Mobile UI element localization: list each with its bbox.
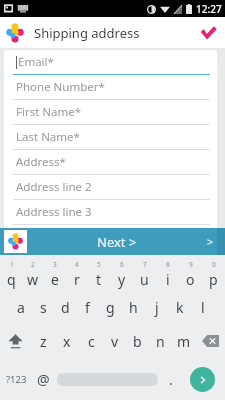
button[interactable]: . <box>160 358 181 400</box>
staticText: f <box>85 298 90 317</box>
staticText: h <box>129 298 138 317</box>
button[interactable]: h <box>122 290 145 324</box>
button[interactable]: v <box>103 324 126 358</box>
staticText: q <box>7 270 16 289</box>
button[interactable]: 0 <box>202 258 225 290</box>
button[interactable]: Backspace <box>195 324 225 358</box>
button[interactable]: k <box>168 290 191 324</box>
staticText: First Name* <box>16 104 82 120</box>
button[interactable]: j <box>145 290 168 324</box>
staticText: w <box>27 270 39 289</box>
button[interactable]: 2 <box>22 258 44 290</box>
staticText: Address line 2 <box>16 179 92 195</box>
button[interactable]: @ <box>32 358 55 400</box>
staticText: e <box>51 270 59 289</box>
staticText: k <box>176 298 184 317</box>
staticText: x <box>63 332 71 351</box>
staticText: Next > <box>97 233 137 251</box>
button[interactable]: 6 <box>110 258 133 290</box>
staticText: . <box>169 370 173 389</box>
staticText: v <box>111 332 119 351</box>
staticText: a <box>17 298 25 317</box>
button[interactable]: Space <box>55 358 160 400</box>
button[interactable]: First Name* <box>4 100 217 125</box>
staticText: 5 <box>97 260 101 269</box>
button[interactable]: 7 <box>133 258 156 290</box>
staticText: d <box>61 298 70 317</box>
staticText: Address line 3 <box>16 204 92 220</box>
button[interactable]: Address line 2 <box>4 175 217 200</box>
staticText: c <box>88 332 95 351</box>
staticText: 4 <box>75 260 79 269</box>
button[interactable]: 5 <box>88 258 110 290</box>
button[interactable]: 4 <box>66 258 88 290</box>
staticText: 7 <box>143 260 147 269</box>
staticText: 3 <box>53 260 57 269</box>
staticText: l <box>201 298 205 317</box>
button[interactable]: Address line 3 <box>4 200 217 225</box>
button[interactable]: 9 <box>179 258 202 290</box>
staticText: Phone Number* <box>16 79 105 95</box>
button[interactable]: ?123 <box>0 358 32 400</box>
staticText: m <box>177 332 191 351</box>
staticText: 0 <box>212 260 216 269</box>
staticText: u <box>140 270 149 289</box>
staticText: @ <box>37 370 50 389</box>
staticText: Shipping address <box>34 24 140 42</box>
button[interactable]: f <box>76 290 99 324</box>
staticText: 1 <box>10 260 14 269</box>
button[interactable]: a <box>10 290 32 324</box>
staticText: b <box>133 332 142 351</box>
button[interactable]: b <box>126 324 149 358</box>
button[interactable]: 1 <box>0 258 22 290</box>
staticText: Last Name* <box>16 129 80 145</box>
staticText: ?123 <box>6 373 27 386</box>
button[interactable]: s <box>32 290 54 324</box>
staticText: Address* <box>16 154 66 170</box>
button[interactable]: 8 <box>156 258 179 290</box>
staticText: g <box>106 298 115 317</box>
button[interactable]: n <box>149 324 172 358</box>
staticText: p <box>209 270 218 289</box>
staticText: i <box>166 270 170 289</box>
button[interactable]: c <box>79 324 103 358</box>
staticText: s <box>40 298 47 317</box>
button[interactable]: 3 <box>44 258 66 290</box>
staticText: > <box>207 234 214 249</box>
staticText: 6 <box>120 260 124 269</box>
staticText: 12:27 <box>196 2 222 16</box>
staticText: n <box>156 332 165 351</box>
staticText: z <box>40 332 47 351</box>
staticText: Email* <box>18 54 54 70</box>
staticText: y <box>118 270 126 289</box>
button[interactable]: Enter <box>181 358 223 400</box>
button[interactable]: Email* <box>4 50 217 75</box>
button[interactable]: g <box>99 290 122 324</box>
button[interactable]: Last Name* <box>4 125 217 150</box>
button[interactable]: Confirm <box>191 17 225 48</box>
button[interactable]: z <box>31 324 55 358</box>
staticText: 2 <box>31 260 35 269</box>
button[interactable]: l <box>191 290 214 324</box>
staticText: 9 <box>189 260 193 269</box>
button[interactable]: Address* <box>4 150 217 175</box>
button[interactable]: Next > <box>0 228 225 255</box>
staticText: j <box>155 298 159 317</box>
staticText: 8 <box>166 260 170 269</box>
button[interactable]: x <box>55 324 79 358</box>
button[interactable]: d <box>54 290 76 324</box>
button[interactable]: Shift <box>0 324 31 358</box>
button[interactable]: Phone Number* <box>4 75 217 100</box>
button[interactable]: m <box>172 324 195 358</box>
staticText: t <box>96 270 102 289</box>
staticText: o <box>186 270 195 289</box>
staticText: r <box>74 270 80 289</box>
